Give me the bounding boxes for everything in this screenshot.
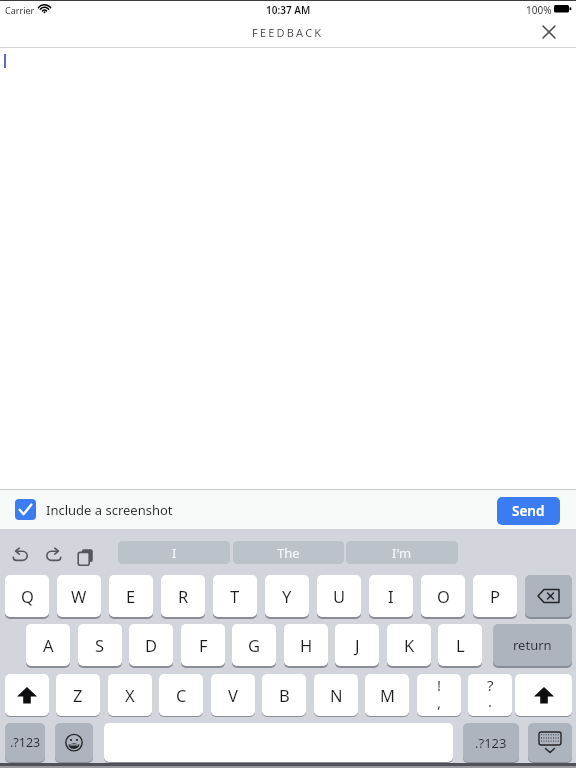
staticText: X (125, 684, 135, 706)
staticText: The (277, 544, 300, 562)
staticText: J (355, 634, 360, 656)
staticText: G (248, 634, 261, 656)
button[interactable]: return (493, 624, 572, 666)
button[interactable]: A (26, 624, 70, 666)
button[interactable] (538, 21, 560, 43)
staticText: L (456, 634, 465, 656)
button[interactable]: I'm (346, 541, 458, 564)
staticText: N (330, 684, 343, 706)
button[interactable]: I (369, 575, 413, 617)
button[interactable]: ? (468, 674, 512, 716)
button[interactable] (55, 723, 93, 762)
staticText: C (176, 684, 187, 706)
staticText: I'm (392, 544, 412, 562)
button[interactable]: B (262, 674, 306, 716)
staticText: W (71, 585, 87, 607)
staticText: 10:37 AM (266, 3, 311, 17)
button[interactable]: Y (265, 575, 309, 617)
staticText: I (388, 585, 394, 607)
button[interactable]: M (365, 674, 409, 716)
staticText: T (230, 585, 240, 607)
button[interactable]: L (438, 624, 482, 666)
button[interactable] (5, 674, 49, 716)
staticText: 100% (526, 3, 552, 17)
button[interactable]: V (211, 674, 255, 716)
button[interactable]: Z (56, 674, 100, 716)
button[interactable]: Send (497, 497, 560, 525)
button[interactable]: W (57, 575, 101, 617)
staticText: S (95, 634, 105, 656)
button[interactable]: C (159, 674, 203, 716)
button[interactable]: Q (5, 575, 49, 617)
button[interactable]: ! (417, 674, 461, 716)
staticText: Carrier (5, 4, 35, 16)
button[interactable] (525, 575, 572, 617)
button[interactable]: J (335, 624, 379, 666)
button[interactable]: X (108, 674, 152, 716)
button[interactable]: N (314, 674, 358, 716)
staticText: P (490, 585, 500, 607)
staticText: ! (437, 675, 442, 695)
staticText: B (279, 684, 290, 706)
button[interactable]: E (109, 575, 153, 617)
staticText: K (404, 634, 415, 656)
button[interactable] (528, 723, 572, 762)
button[interactable]: H (284, 624, 328, 666)
staticText: V (228, 684, 238, 706)
button[interactable] (76, 548, 96, 566)
button[interactable]: G (232, 624, 276, 666)
button[interactable]: I (118, 541, 230, 564)
button[interactable]: K (387, 624, 431, 666)
button[interactable] (44, 548, 64, 564)
button[interactable]: U (317, 575, 361, 617)
staticText: D (145, 634, 158, 656)
staticText: . (488, 691, 493, 711)
button[interactable]: T (213, 575, 257, 617)
staticText: , (437, 692, 442, 712)
staticText: ? (487, 675, 494, 695)
button[interactable] (515, 674, 572, 716)
staticText: I (172, 544, 177, 562)
button[interactable]: S (78, 624, 122, 666)
staticText: Include a screenshot (46, 501, 173, 519)
staticText: Q (21, 585, 34, 607)
staticText: O (437, 585, 450, 607)
staticText: U (333, 585, 346, 607)
staticText: Send (512, 502, 545, 520)
staticText: .?123 (10, 734, 41, 751)
button[interactable]: O (421, 575, 465, 617)
staticText: FEEDBACK (252, 25, 324, 40)
button[interactable]: F (181, 624, 225, 666)
button[interactable]: R (161, 575, 205, 617)
staticText: .?123 (475, 734, 507, 752)
staticText: E (126, 585, 136, 607)
staticText: R (178, 585, 189, 607)
button[interactable]: .?123 (463, 723, 519, 762)
button[interactable] (10, 548, 30, 564)
staticText: M (380, 684, 395, 706)
staticText: Z (73, 684, 83, 706)
staticText: A (43, 634, 54, 656)
button[interactable]: P (473, 575, 517, 617)
button[interactable]: D (129, 624, 173, 666)
staticText: F (199, 634, 208, 656)
staticText: H (300, 634, 313, 656)
staticText: Y (282, 585, 292, 607)
button[interactable]: The (233, 541, 344, 564)
staticText: return (513, 636, 552, 654)
button[interactable]: .?123 (5, 723, 45, 762)
button[interactable] (15, 499, 195, 521)
